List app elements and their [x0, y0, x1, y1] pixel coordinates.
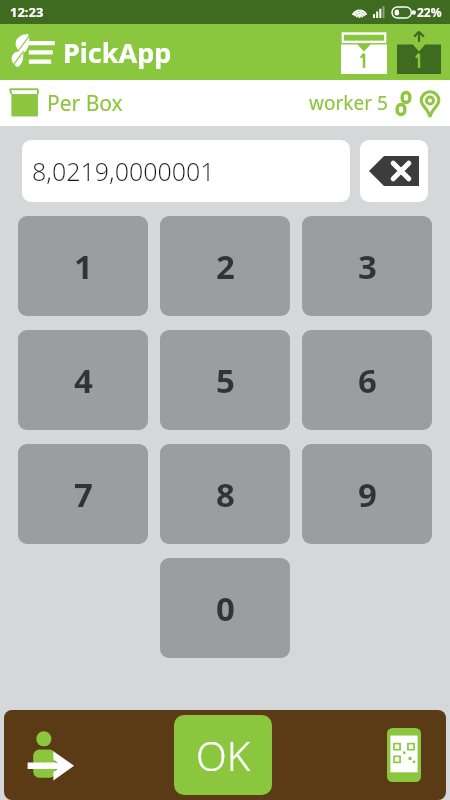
button[interactable]: Upload box, 1	[392, 26, 446, 78]
button[interactable]: 2	[160, 216, 290, 316]
button[interactable]: 0	[160, 558, 290, 658]
button[interactable]: 1	[18, 216, 148, 316]
staticText: 1	[74, 244, 93, 289]
staticText: 5	[216, 358, 235, 403]
button[interactable]: 6	[302, 330, 432, 430]
staticText: 4	[74, 358, 93, 403]
button[interactable]: Logout	[18, 723, 82, 787]
staticText: 6	[358, 358, 377, 403]
staticText: 7	[74, 472, 93, 517]
staticText: 9	[358, 472, 377, 517]
staticText: worker 5	[309, 90, 388, 116]
button[interactable]: 7	[18, 444, 148, 544]
button[interactable]: Open box, 1	[336, 26, 392, 78]
staticText: Per Box	[47, 89, 123, 118]
button[interactable]: 9	[302, 444, 432, 544]
button[interactable]: 8,0219,0000001	[22, 140, 350, 202]
button[interactable]: Backspace	[360, 140, 428, 202]
staticText: 12:23	[10, 3, 44, 21]
button[interactable]: 8	[160, 444, 290, 544]
staticText: PickApp	[63, 34, 172, 71]
staticText: 22%	[417, 4, 442, 20]
staticText: 2	[216, 244, 235, 289]
staticText: 0	[216, 586, 235, 631]
button[interactable]: Location	[416, 87, 444, 119]
staticText: 3	[358, 244, 377, 289]
button[interactable]: OK	[174, 715, 272, 795]
staticText: OK	[196, 728, 251, 782]
button[interactable]: 3	[302, 216, 432, 316]
button[interactable]: 5	[160, 330, 290, 430]
button[interactable]: 4	[18, 330, 148, 430]
button[interactable]: Scan barcode	[374, 725, 434, 785]
staticText: 8,0219,0000001	[32, 154, 215, 188]
button[interactable]: Link	[390, 87, 416, 119]
staticText: 8	[216, 472, 235, 517]
button[interactable]: Per Box	[8, 87, 123, 119]
